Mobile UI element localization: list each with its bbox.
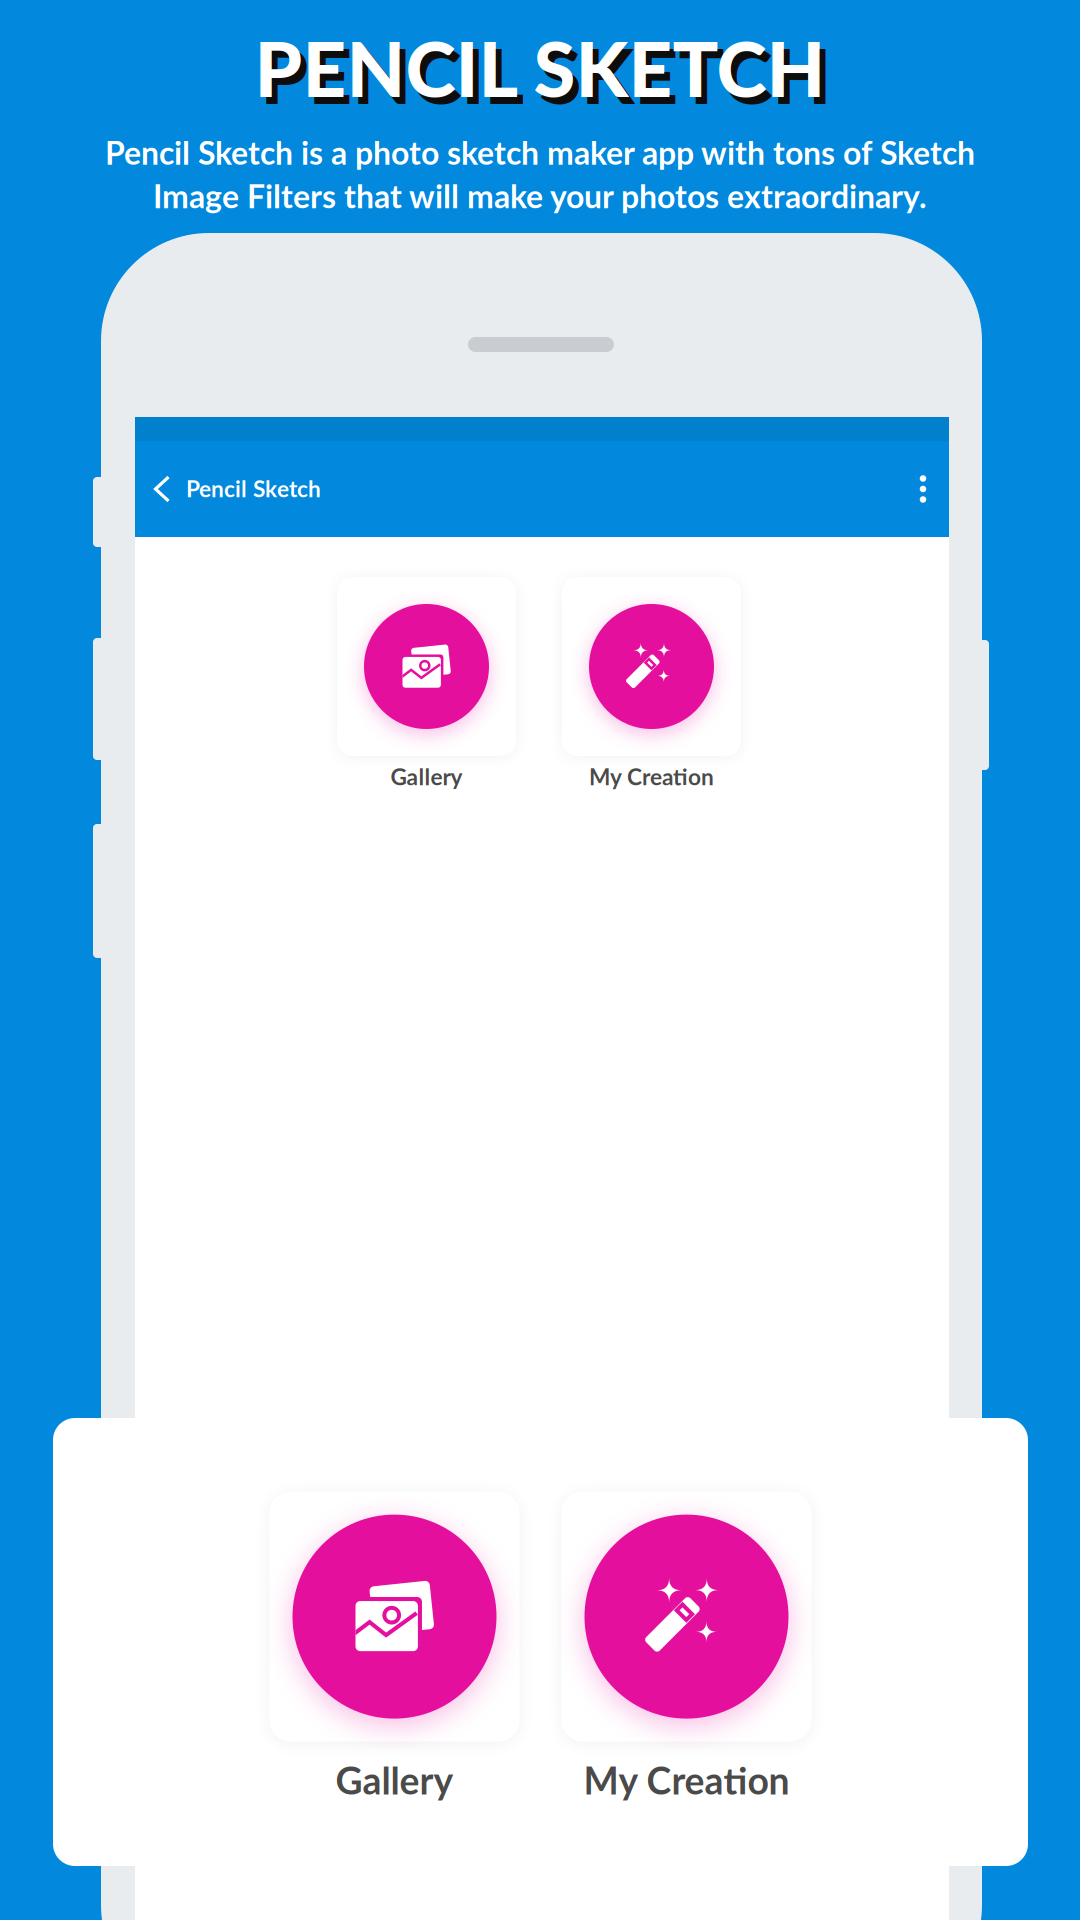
staticText: PENCIL SKETCH	[260, 29, 831, 120]
staticText: Gallery	[390, 763, 462, 790]
staticText: Pencil Sketch is a photo sketch maker ap…	[105, 133, 975, 172]
button[interactable]: My Creation	[562, 577, 741, 790]
button[interactable]: Gallery	[337, 577, 516, 790]
staticText: Image Filters that will make your photos…	[153, 177, 927, 215]
button[interactable]: More options	[898, 458, 948, 520]
staticText: My Creation	[589, 763, 714, 790]
button[interactable]: My Creation	[561, 1492, 811, 1802]
staticText: My Creation	[583, 1758, 789, 1802]
staticText: Pencil Sketch	[186, 475, 321, 502]
button[interactable]: Back	[139, 458, 185, 520]
staticText: PENCIL SKETCH	[254, 22, 825, 113]
button[interactable]: Gallery	[269, 1492, 519, 1802]
staticText: Gallery	[335, 1758, 453, 1802]
